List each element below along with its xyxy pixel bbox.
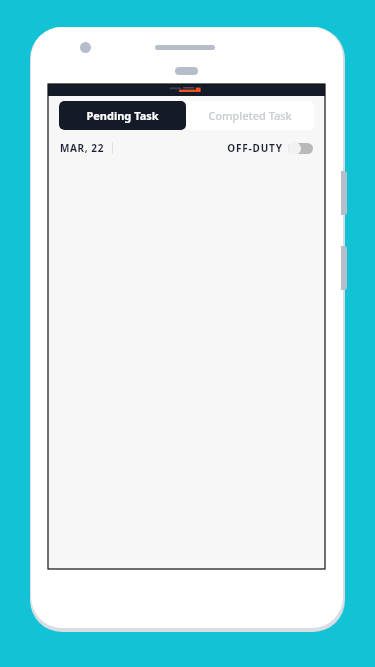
button[interactable]: Completed Task <box>186 101 314 130</box>
button[interactable]: Pending Task <box>59 101 186 130</box>
staticText: Pending Task <box>86 108 159 123</box>
staticText: OFF-DUTY <box>227 141 283 155</box>
button[interactable]: OFF-DUTY <box>227 141 313 155</box>
staticText: MAR, 22 <box>60 141 104 155</box>
other: Duty status toggle <box>288 142 313 155</box>
staticText: Completed Task <box>208 108 292 123</box>
